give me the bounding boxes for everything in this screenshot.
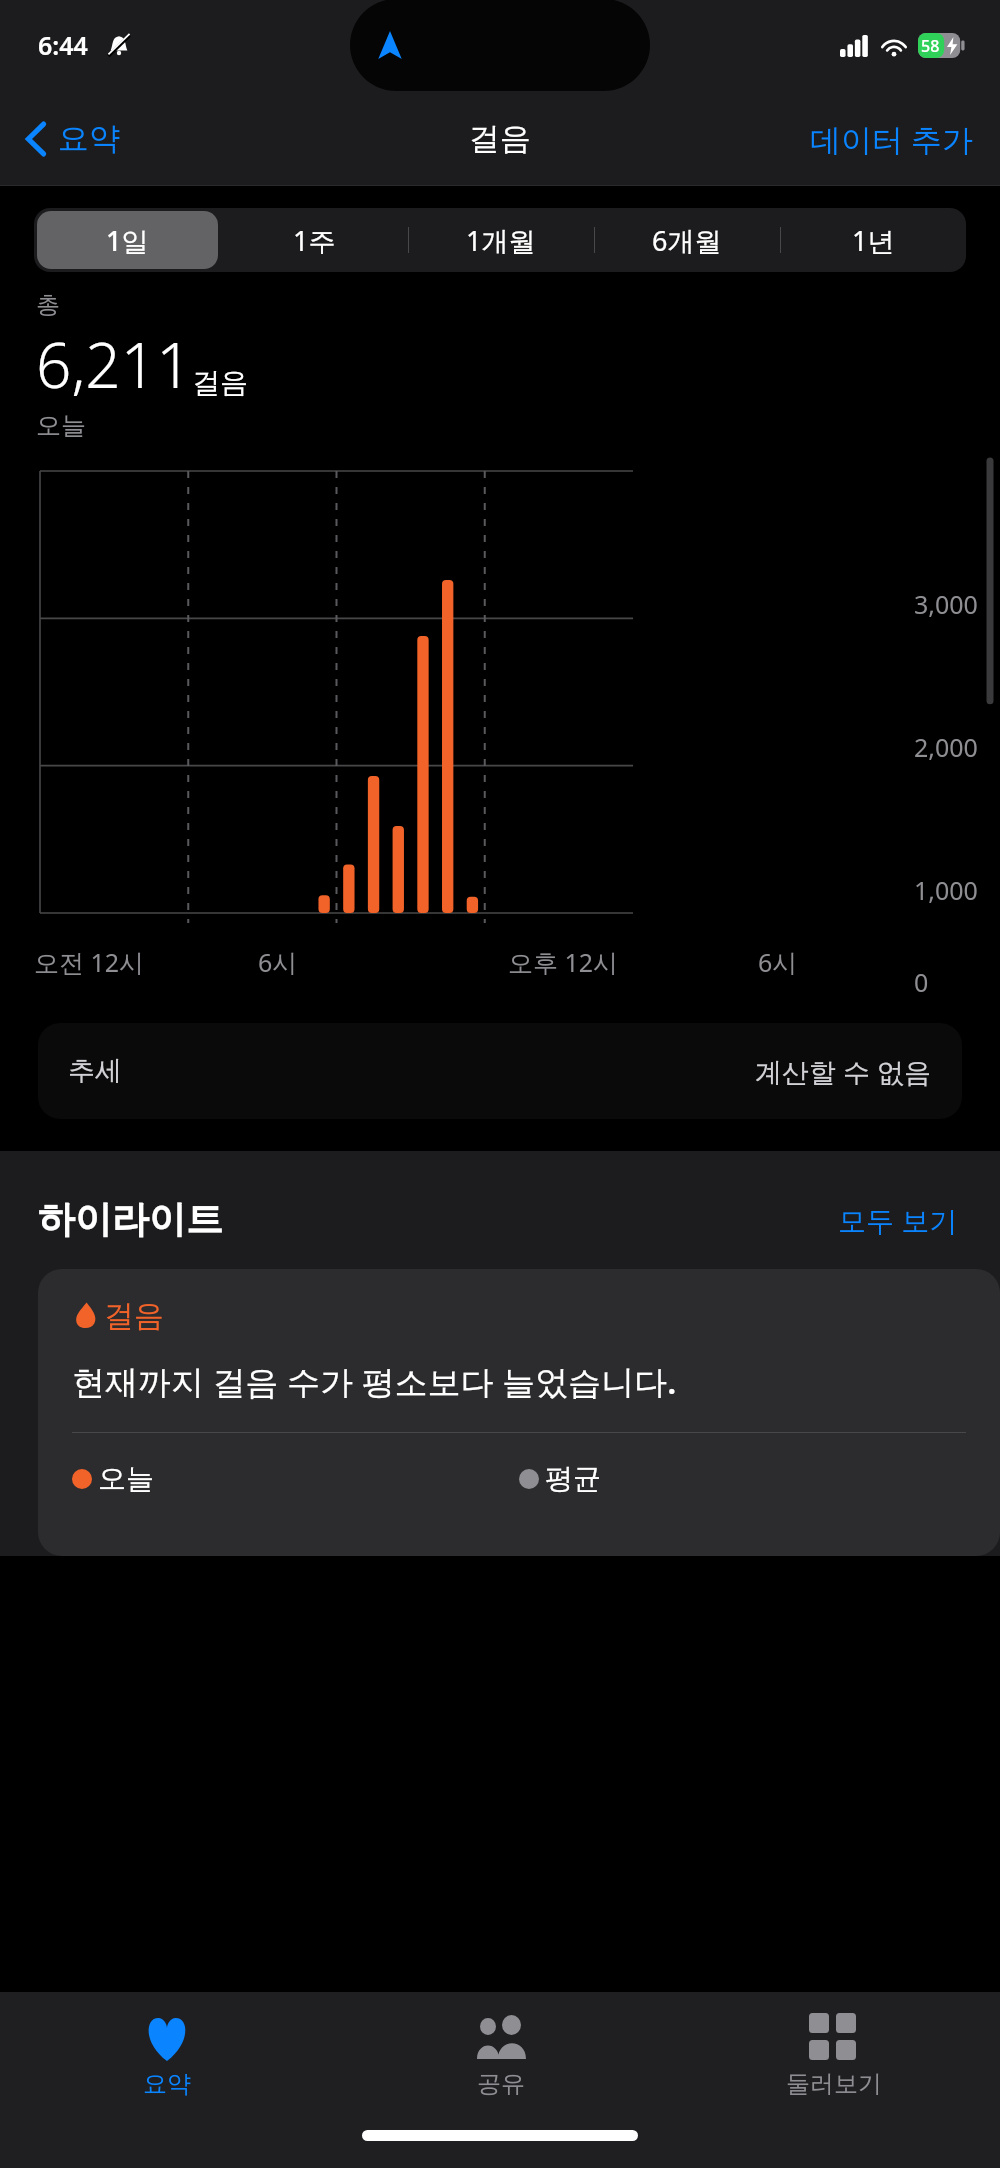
button[interactable]: 모두 보기 [834, 1197, 962, 1243]
staticText: 오후 12시 [508, 945, 619, 979]
staticText: 걸음 [104, 1297, 164, 1335]
button[interactable]: 1주 [221, 208, 408, 272]
button[interactable]: 데이터 추가 [784, 108, 1000, 170]
staticText: 오전 12시 [34, 945, 145, 979]
staticText: 총 [36, 290, 60, 320]
staticText: 1주 [293, 222, 336, 259]
button[interactable]: 요약 [0, 1992, 334, 2120]
staticText: 58 [921, 35, 940, 57]
staticText: 걸음 [192, 365, 248, 400]
staticText: 3,000 [914, 587, 978, 621]
staticText: 추세 [68, 1054, 122, 1088]
staticText: 하이라이트 [38, 1196, 223, 1243]
button[interactable]: 공유 [334, 1992, 667, 2120]
button[interactable]: 요약 [22, 111, 124, 166]
staticText: 6:44 [38, 28, 88, 62]
button[interactable]: 둘러보기 [667, 1992, 1000, 2120]
staticText: 요약 [143, 2069, 191, 2099]
button[interactable]: 1일 [34, 208, 221, 272]
staticText: 6,211 [36, 322, 192, 406]
button[interactable]: 6개월 [594, 208, 780, 272]
staticText: 6시 [758, 945, 798, 979]
staticText: 요약 [58, 119, 120, 158]
staticText: 공유 [477, 2069, 525, 2099]
staticText: 6시 [258, 945, 298, 979]
staticText: 걸음 [469, 119, 531, 158]
staticText: 오늘 [98, 1461, 154, 1496]
button[interactable]: 걸음 [38, 1269, 1000, 1556]
staticText: 1개월 [466, 222, 536, 259]
button[interactable]: 1년 [780, 208, 966, 272]
staticText: 6개월 [652, 222, 722, 259]
staticText: 1년 [852, 222, 895, 259]
button[interactable]: 1개월 [408, 208, 594, 272]
staticText: 2,000 [914, 730, 978, 764]
staticText: 현재까지 걸음 수가 평소보다 늘었습니다. [72, 1359, 677, 1404]
staticText: 0 [914, 965, 929, 999]
staticText: 오늘 [36, 410, 86, 441]
staticText: 1일 [106, 222, 149, 259]
button[interactable]: 추세 [38, 1023, 962, 1119]
staticText: 1,000 [914, 873, 978, 907]
staticText: 계산할 수 없음 [755, 1053, 932, 1090]
staticText: 평균 [545, 1461, 601, 1496]
staticText: 둘러보기 [786, 2069, 882, 2099]
